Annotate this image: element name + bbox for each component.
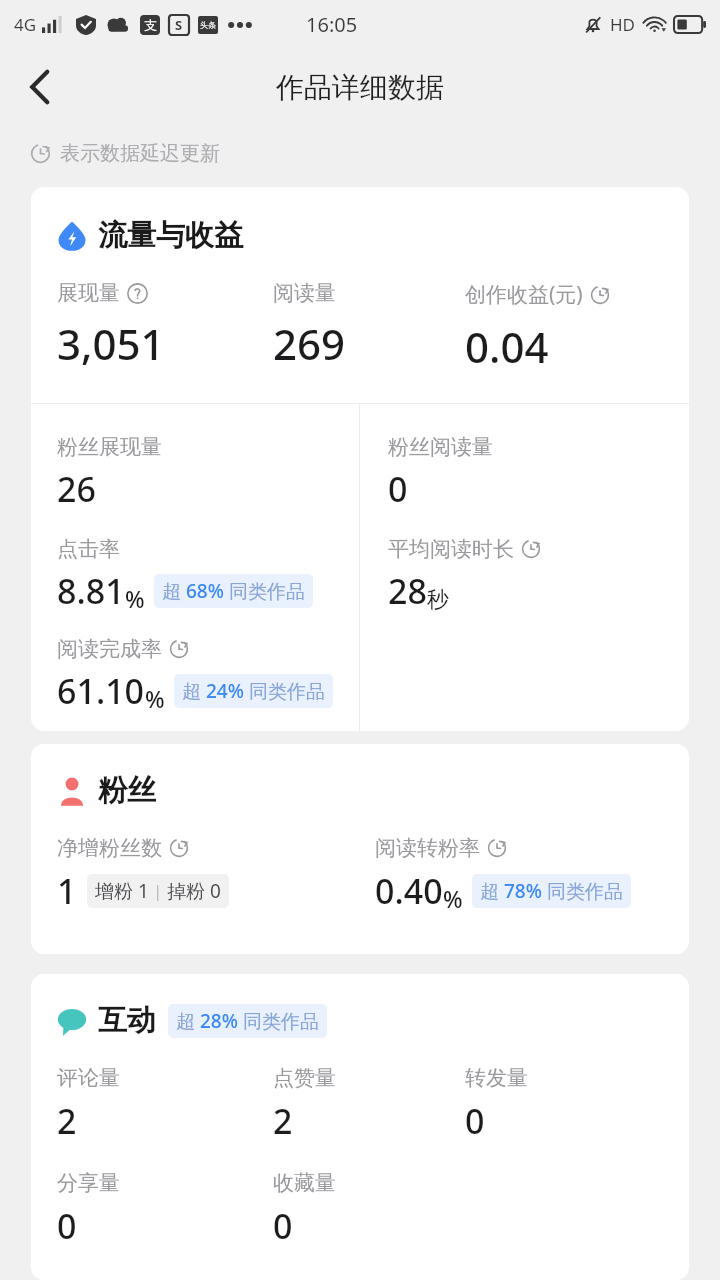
staticText: HD bbox=[610, 13, 636, 36]
staticText: 同类作品 bbox=[244, 678, 325, 704]
staticText: 0 bbox=[465, 1098, 485, 1144]
staticText: 2 bbox=[57, 1098, 77, 1144]
staticText: 平均阅读时长 bbox=[388, 536, 514, 562]
staticText: 头条 bbox=[200, 20, 216, 30]
staticText: 支 bbox=[144, 17, 157, 33]
staticText: 0 bbox=[57, 1203, 77, 1249]
staticText: 粉丝展现量 bbox=[57, 434, 162, 460]
button[interactable]: 超 bbox=[480, 878, 623, 904]
staticText: 0 bbox=[388, 466, 408, 512]
staticText: 2 bbox=[273, 1098, 293, 1144]
staticText: 28 bbox=[388, 568, 427, 614]
staticText: 0 bbox=[273, 1203, 293, 1249]
staticText: 同类作品 bbox=[238, 1008, 319, 1034]
staticText: 秒 bbox=[427, 586, 449, 614]
staticText: | bbox=[149, 880, 167, 902]
button[interactable]: 超 bbox=[182, 678, 325, 704]
staticText: S bbox=[175, 16, 183, 34]
staticText: 掉粉 0 bbox=[167, 878, 221, 904]
staticText: 展现量 bbox=[57, 280, 120, 306]
button[interactable]: 增粉 1 bbox=[95, 878, 221, 904]
staticText: 1 bbox=[57, 868, 77, 914]
button[interactable]: 超 bbox=[162, 578, 305, 604]
staticText: 粉丝 bbox=[98, 772, 156, 809]
staticText: 24% bbox=[206, 678, 244, 704]
staticText: 流量与收益 bbox=[98, 217, 243, 254]
staticText: 作品详细数据 bbox=[276, 70, 444, 105]
staticText: 78% bbox=[504, 878, 542, 904]
staticText: 点赞量 bbox=[273, 1065, 336, 1091]
staticText: 超 bbox=[162, 578, 186, 604]
staticText: % bbox=[125, 583, 145, 614]
staticText: 16:05 bbox=[306, 11, 358, 38]
button[interactable]: 超 bbox=[176, 1008, 319, 1034]
staticText: 阅读完成率 bbox=[57, 636, 162, 662]
staticText: 0.40 bbox=[375, 868, 443, 914]
staticText: 评论量 bbox=[57, 1065, 120, 1091]
staticText: 同类作品 bbox=[542, 878, 623, 904]
staticText: % bbox=[145, 683, 165, 714]
staticText: 转发量 bbox=[465, 1065, 528, 1091]
staticText: 28% bbox=[200, 1008, 238, 1034]
staticText: 分享量 bbox=[57, 1170, 120, 1196]
staticText: 增粉 1 bbox=[95, 878, 149, 904]
staticText: 收藏量 bbox=[273, 1170, 336, 1196]
staticText: 表示数据延迟更新 bbox=[60, 141, 220, 166]
button[interactable]: 粉丝 bbox=[57, 772, 689, 809]
staticText: 26 bbox=[57, 466, 96, 512]
button[interactable]: 互动 bbox=[57, 1002, 689, 1039]
staticText: 创作收益(元) bbox=[465, 280, 583, 309]
staticText: 68% bbox=[186, 578, 224, 604]
staticText: 同类作品 bbox=[224, 578, 305, 604]
staticText: 超 bbox=[176, 1008, 200, 1034]
button[interactable]: Back bbox=[8, 55, 72, 119]
staticText: 8.81 bbox=[57, 568, 125, 614]
staticText: 0.04 bbox=[465, 318, 549, 375]
staticText: 超 bbox=[182, 678, 206, 704]
staticText: 3,051 bbox=[57, 315, 165, 372]
button[interactable]: 表示数据延迟更新 bbox=[30, 138, 220, 168]
staticText: 269 bbox=[273, 315, 346, 372]
staticText: % bbox=[443, 883, 463, 914]
staticText: 粉丝阅读量 bbox=[388, 434, 493, 460]
button[interactable]: 流量与收益 bbox=[57, 217, 689, 254]
staticText: 净增粉丝数 bbox=[57, 835, 162, 861]
staticText: 4G bbox=[14, 13, 37, 36]
staticText: 互动 bbox=[98, 1002, 156, 1039]
staticText: 61.10 bbox=[57, 668, 145, 714]
staticText: 阅读量 bbox=[273, 280, 336, 306]
staticText: 点击率 bbox=[57, 536, 120, 562]
staticText: 阅读转粉率 bbox=[375, 835, 480, 861]
staticText: 超 bbox=[480, 878, 504, 904]
